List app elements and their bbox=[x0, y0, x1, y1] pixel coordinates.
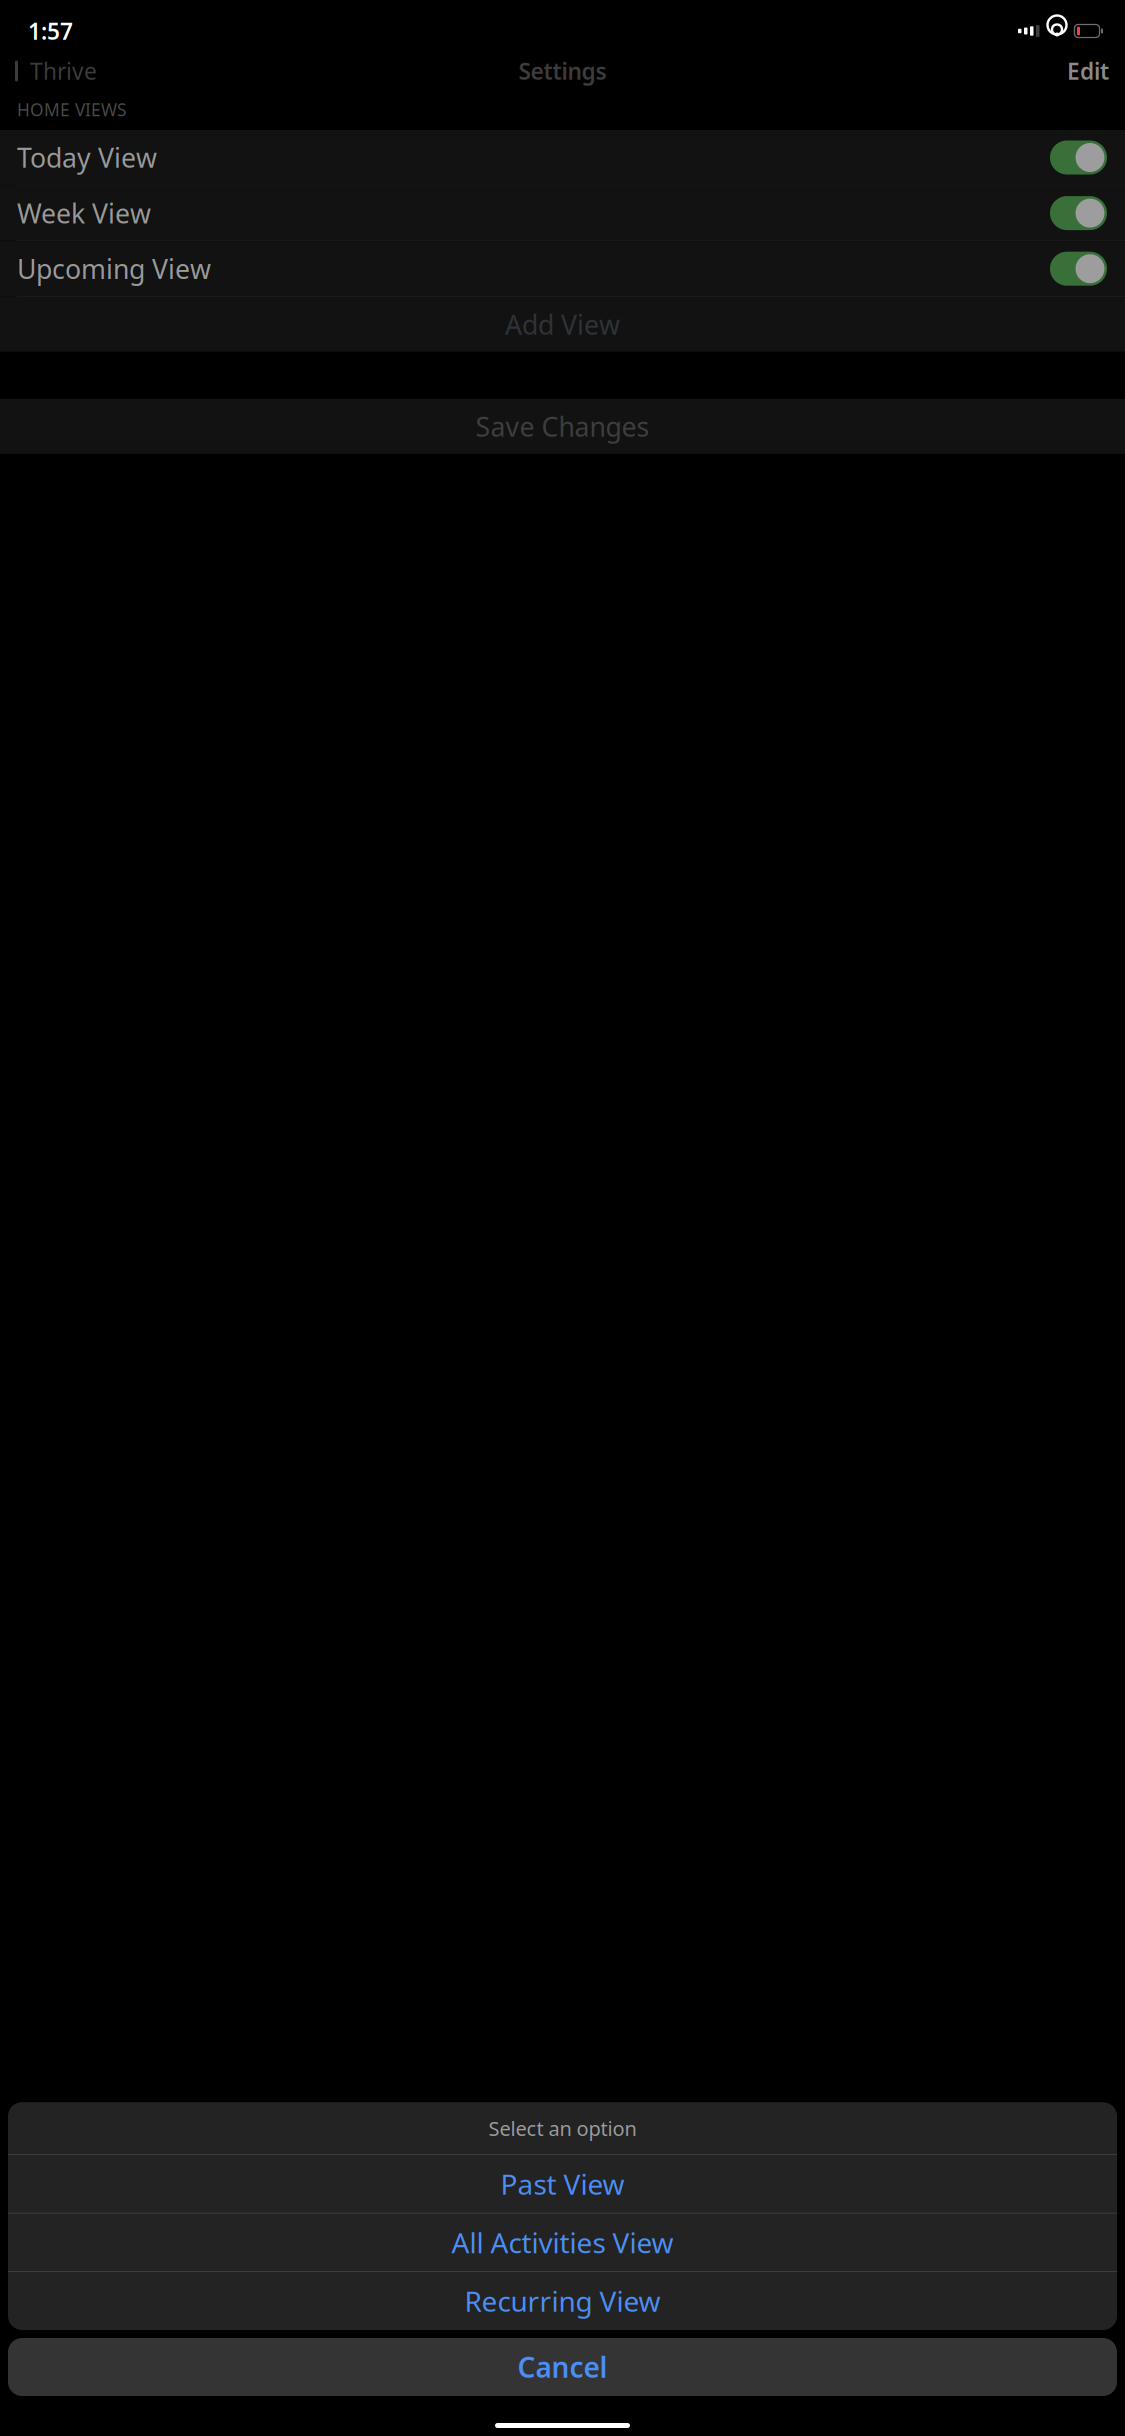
staticText: Edit bbox=[1067, 56, 1109, 86]
staticText: Past View bbox=[500, 2165, 624, 2202]
staticText: Settings bbox=[518, 56, 606, 86]
staticText: Week View bbox=[17, 195, 151, 231]
staticText: All Activities View bbox=[451, 2224, 673, 2261]
button[interactable]: Add View bbox=[0, 297, 1125, 352]
button[interactable]: Save Changes bbox=[0, 399, 1125, 454]
button[interactable]: Thrive bbox=[0, 48, 107, 94]
staticText: Select an option bbox=[488, 2115, 636, 2141]
button[interactable]: All Activities View bbox=[8, 2213, 1117, 2271]
staticText: Save Changes bbox=[475, 409, 649, 444]
staticText: 1:57 bbox=[28, 16, 73, 46]
staticText: Cancel bbox=[517, 2348, 607, 2386]
staticText: Today View bbox=[17, 140, 157, 175]
button[interactable]: Edit bbox=[1051, 48, 1125, 94]
button[interactable]: Cancel bbox=[8, 2338, 1117, 2396]
staticText: HOME VIEWS bbox=[17, 98, 127, 121]
staticText: Thrive bbox=[30, 56, 97, 86]
staticText: Upcoming View bbox=[17, 251, 211, 286]
staticText: Recurring View bbox=[464, 2282, 660, 2320]
staticText: Add View bbox=[505, 307, 620, 342]
button[interactable]: Past View bbox=[8, 2155, 1117, 2213]
button[interactable]: Recurring View bbox=[8, 2272, 1117, 2330]
